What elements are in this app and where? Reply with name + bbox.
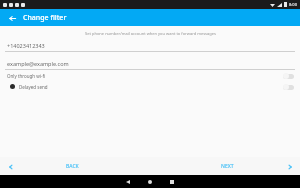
staticText: +14023412343 <box>7 42 45 49</box>
staticText: Change filter <box>23 13 67 23</box>
button[interactable]: Only through wi-fi <box>0 70 300 81</box>
button[interactable]: NEXT <box>215 160 240 173</box>
staticText: Delayed send <box>19 84 48 90</box>
button[interactable]: example@example.com <box>0 60 300 70</box>
staticText: Set phone number/mail account when you w… <box>85 31 216 36</box>
staticText: 8:00 <box>289 2 297 7</box>
staticText: NEXT <box>221 163 234 170</box>
button[interactable]: Home <box>139 175 161 188</box>
button[interactable]: Next <box>283 160 296 173</box>
button[interactable]: BACK <box>60 160 85 173</box>
button[interactable]: +14023412343 <box>0 42 300 52</box>
staticText: example@example.com <box>7 60 69 67</box>
button[interactable]: Back <box>117 175 139 188</box>
button[interactable]: Previous <box>4 160 17 173</box>
button[interactable]: Back <box>6 12 18 24</box>
staticText: BACK <box>66 163 79 170</box>
staticText: Only through wi-fi <box>7 73 46 79</box>
button[interactable]: Delayed send <box>0 81 300 92</box>
button[interactable]: Recent apps <box>161 175 183 188</box>
